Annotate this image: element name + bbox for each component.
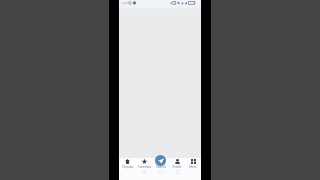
button[interactable]: Favorites bbox=[136, 154, 153, 170]
button[interactable]: Popular bbox=[119, 154, 136, 170]
button[interactable]: Profile bbox=[169, 154, 185, 170]
button[interactable]: More bbox=[185, 154, 201, 170]
button[interactable]: Search bbox=[153, 154, 169, 170]
staticText: Profile bbox=[172, 165, 182, 169]
staticText: More bbox=[189, 165, 197, 169]
staticText: Search bbox=[156, 165, 166, 169]
staticText: Popular bbox=[122, 165, 134, 169]
staticText: Favorites bbox=[138, 165, 151, 169]
